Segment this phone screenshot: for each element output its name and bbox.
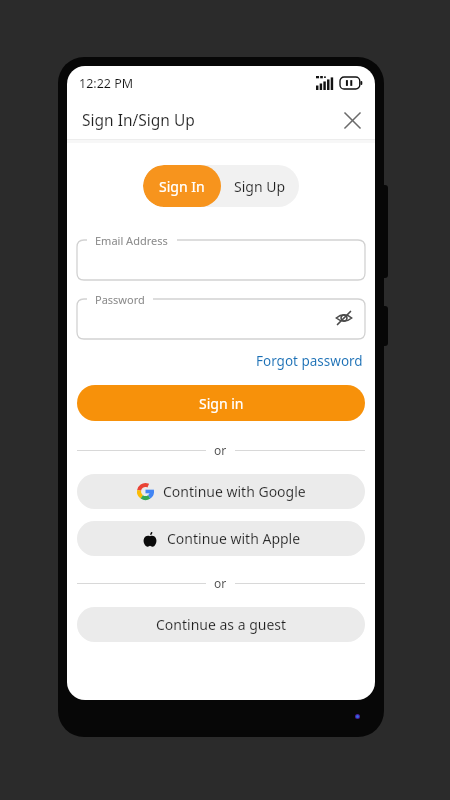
staticText: Continue as a guest [156, 615, 287, 634]
staticText: Forgot password [256, 352, 363, 370]
staticText: Sign in [199, 394, 244, 413]
button[interactable]: Sign in [77, 385, 365, 421]
button[interactable]: Continue with Apple [77, 521, 365, 556]
button[interactable]: Close [335, 103, 369, 137]
button[interactable]: Toggle password visibility [329, 303, 359, 333]
staticText: Email Address [95, 233, 168, 248]
staticText: or [214, 442, 227, 458]
staticText: Password [95, 292, 145, 307]
staticText: Continue with Apple [167, 529, 301, 548]
button[interactable]: Continue as a guest [77, 607, 365, 642]
button[interactable]: Forgot password [254, 349, 365, 373]
staticText: Continue with Google [163, 482, 306, 501]
staticText: Sign In [159, 177, 205, 196]
button[interactable]: Sign Up [221, 165, 299, 207]
staticText: or [214, 575, 227, 591]
button[interactable]: Sign In [143, 165, 221, 207]
button[interactable]: Continue with Google [77, 474, 365, 509]
staticText: Sign In/Sign Up [82, 109, 195, 130]
staticText: Sign Up [234, 177, 286, 196]
staticText: 12:22 PM [79, 75, 134, 92]
